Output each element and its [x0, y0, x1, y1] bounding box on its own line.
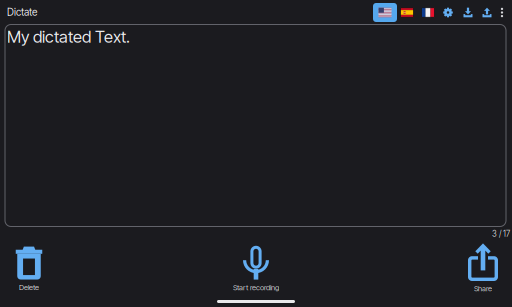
button[interactable]: Settings [438, 3, 458, 22]
staticText: 3 / 17 [492, 229, 510, 239]
button[interactable]: French [417, 3, 439, 22]
button[interactable]: Export [477, 3, 497, 22]
button[interactable]: Share [454, 244, 512, 292]
button[interactable]: Import [458, 3, 478, 22]
staticText: Delete [19, 283, 39, 292]
button[interactable]: Spanish [396, 3, 418, 22]
staticText: Start recording [233, 283, 279, 292]
staticText: My dictated Text. [7, 26, 130, 47]
button[interactable]: More options [494, 3, 510, 22]
button[interactable]: English [373, 3, 397, 22]
staticText: Dictate [7, 6, 37, 18]
staticText: Share [474, 284, 492, 293]
button[interactable]: Delete [0, 245, 58, 293]
button[interactable]: Start recording [216, 244, 296, 292]
